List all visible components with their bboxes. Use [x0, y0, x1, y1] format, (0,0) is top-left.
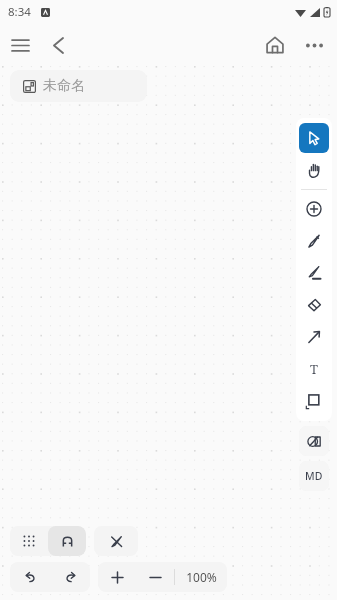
- staticText: T: [310, 360, 318, 378]
- button[interactable]: Eraser: [299, 290, 329, 320]
- staticText: 未命名: [43, 77, 85, 95]
- button[interactable]: 100%: [175, 562, 227, 592]
- staticText: MD: [305, 469, 323, 483]
- button[interactable]: Snap to grid: [48, 526, 86, 556]
- button[interactable]: Select tool: [299, 123, 329, 153]
- button[interactable]: Pan tool: [299, 155, 329, 185]
- staticText: 8:34: [8, 4, 31, 20]
- button[interactable]: Ink color: [299, 426, 329, 456]
- button[interactable]: Redo: [50, 562, 90, 592]
- button[interactable]: Home: [255, 25, 295, 65]
- button[interactable]: Zoom in: [98, 562, 136, 592]
- button[interactable]: Zoom out: [136, 562, 174, 592]
- button[interactable]: Menu: [0, 25, 40, 65]
- button[interactable]: 未命名: [10, 70, 147, 102]
- button[interactable]: Back: [40, 27, 76, 63]
- button[interactable]: Pen: [299, 226, 329, 256]
- button[interactable]: Text: [299, 354, 329, 384]
- button[interactable]: More options: [295, 26, 333, 64]
- button[interactable]: Shape: [299, 386, 329, 416]
- button[interactable]: Arrow: [299, 322, 329, 352]
- button[interactable]: Add: [299, 194, 329, 224]
- button[interactable]: Highlighter: [299, 258, 329, 288]
- button[interactable]: Grid: [10, 526, 48, 556]
- staticText: 100%: [186, 569, 217, 585]
- button[interactable]: Undo: [10, 562, 50, 592]
- button[interactable]: MD: [299, 461, 329, 491]
- button[interactable]: Disable stylus only: [94, 526, 138, 556]
